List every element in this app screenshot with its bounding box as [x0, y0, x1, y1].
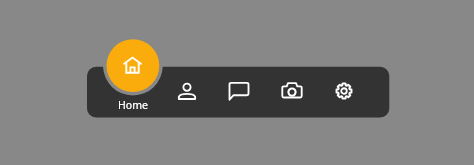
button[interactable]: Account [165, 69, 209, 113]
button[interactable]: Messages [217, 69, 261, 113]
staticText: Home [103, 98, 163, 112]
button[interactable]: Camera [270, 69, 314, 113]
button[interactable]: Settings [322, 69, 366, 113]
button[interactable]: Home [106, 39, 159, 92]
